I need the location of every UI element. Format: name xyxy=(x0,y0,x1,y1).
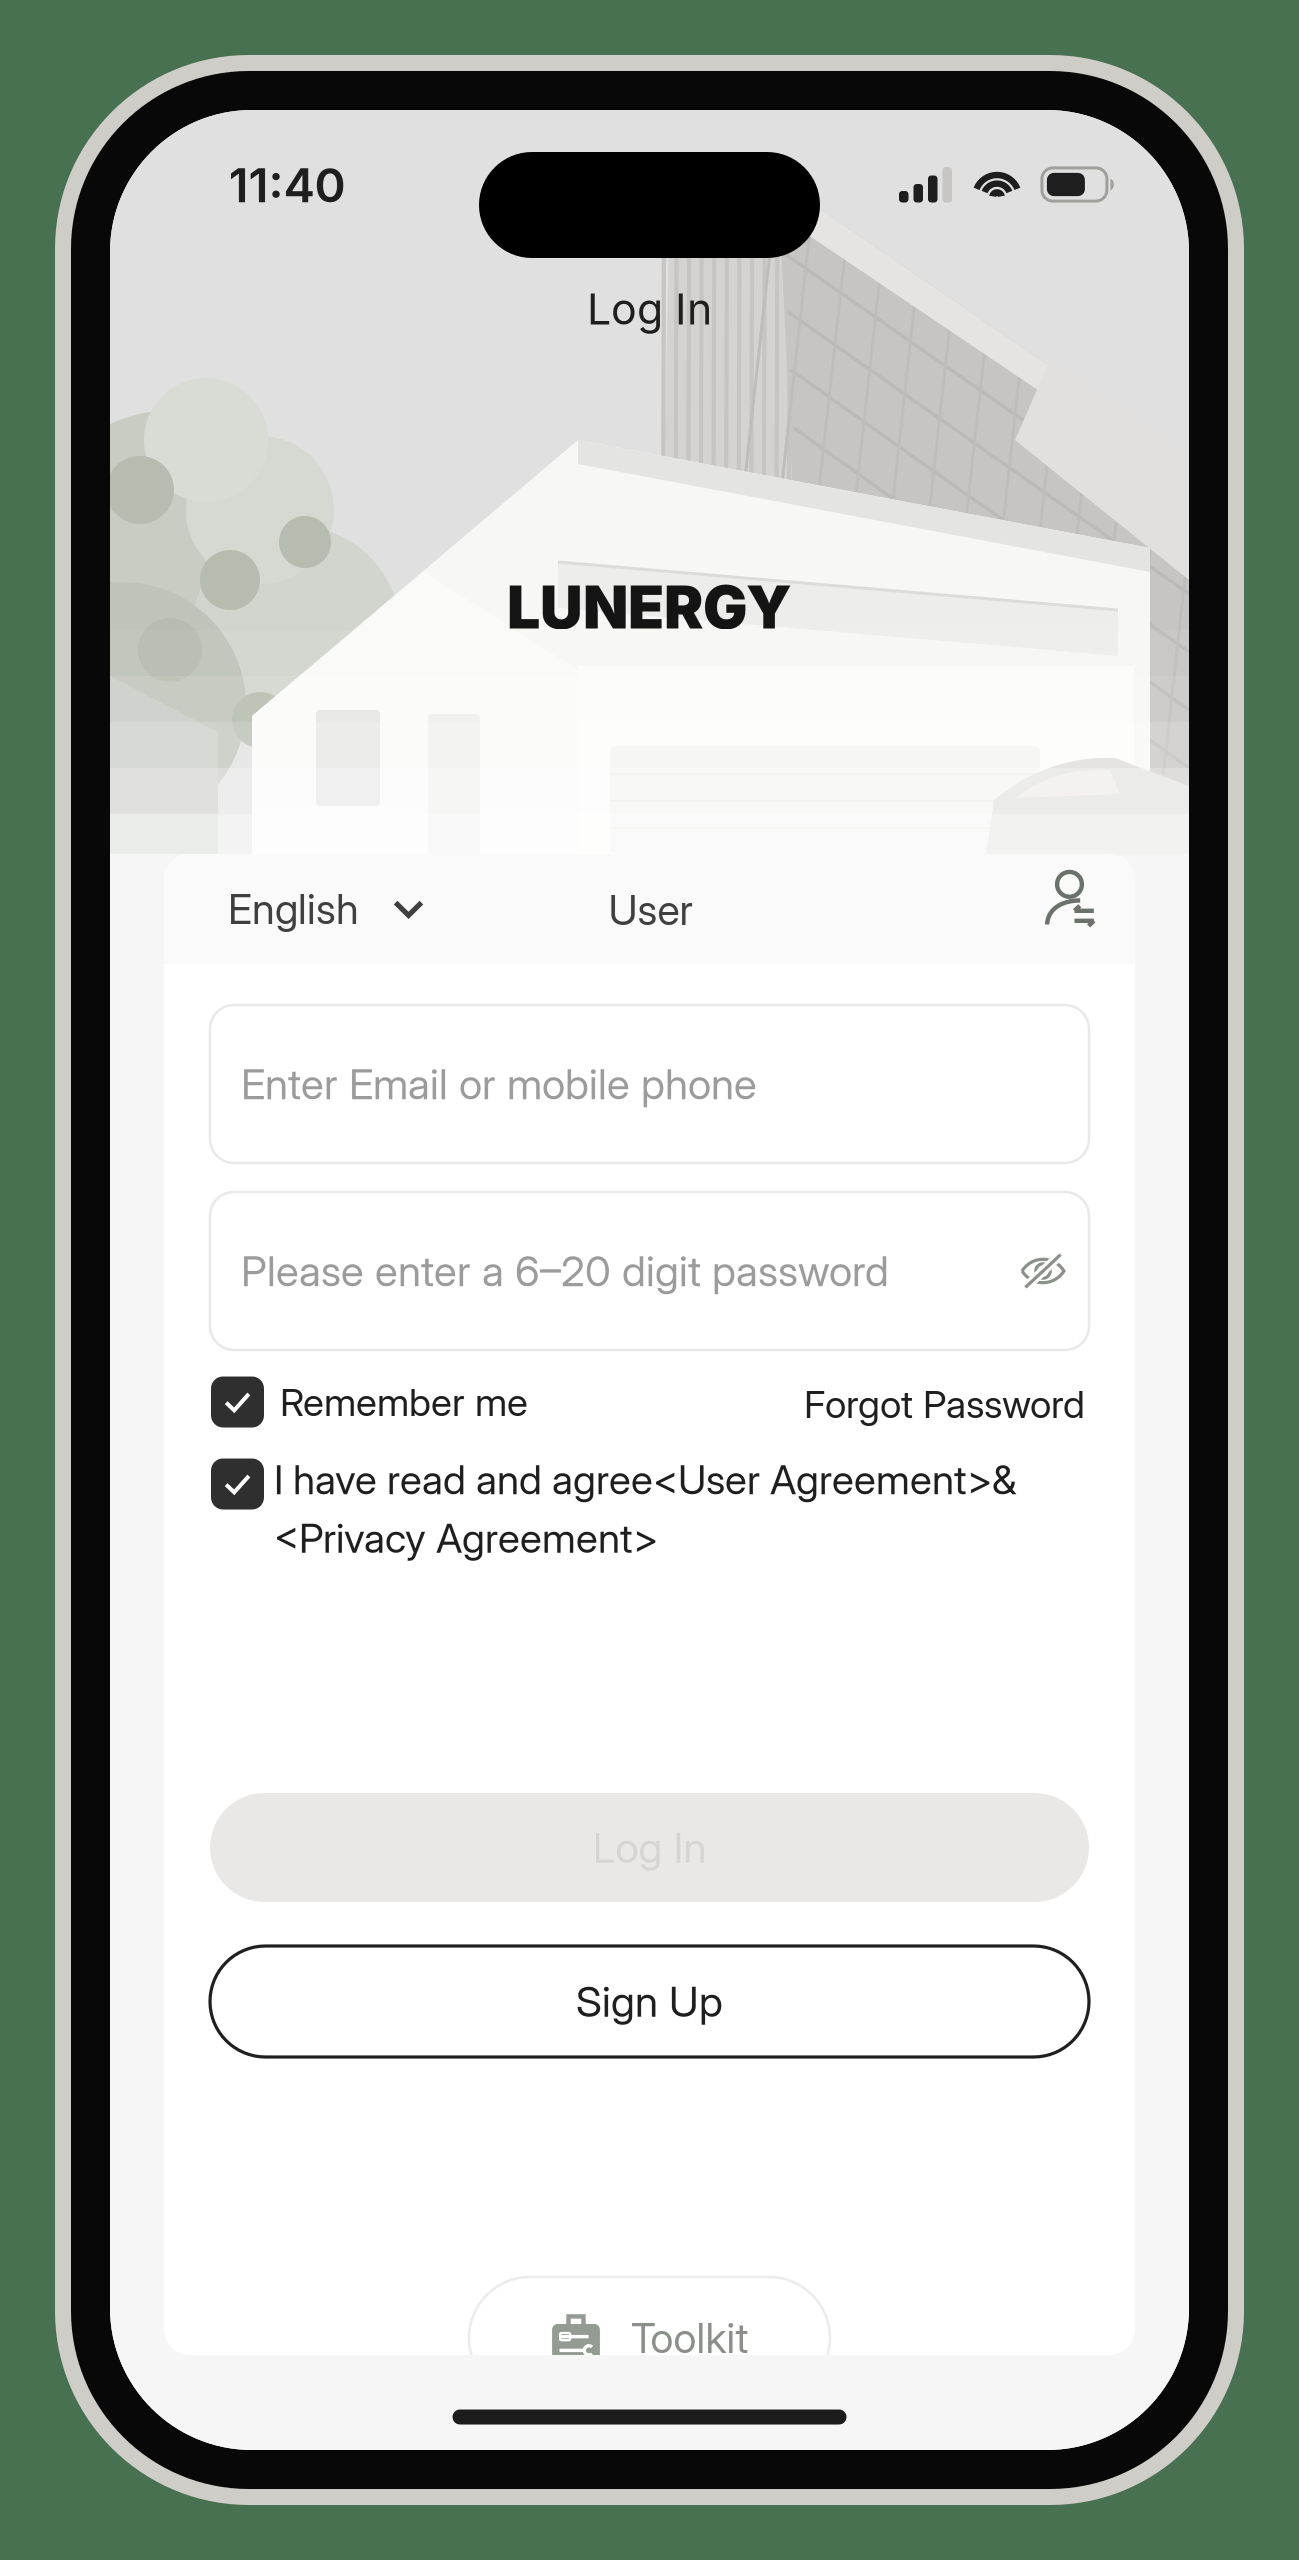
staticText: 11:40 xyxy=(228,156,345,213)
button[interactable]: Remember me xyxy=(211,1365,541,1439)
button[interactable]: Sign Up xyxy=(210,1946,1089,2057)
staticText: Enter Email or mobile phone xyxy=(241,1059,757,1109)
staticText: English xyxy=(228,884,359,934)
staticText: Remember me xyxy=(280,1379,528,1425)
staticText: Please enter a 6–20 digit password xyxy=(241,1246,889,1296)
staticText: LUNERGY xyxy=(507,571,792,643)
button[interactable]: Toolkit xyxy=(469,2277,830,2399)
staticText: Log In xyxy=(592,1822,706,1873)
button[interactable]: I have read and agree<User Agreement>& <… xyxy=(211,1441,1089,1577)
button[interactable]: Log In xyxy=(210,1793,1089,1902)
button[interactable]: Switch account type xyxy=(1028,853,1112,943)
staticText: I have read and agree<User Agreement>& <… xyxy=(274,1455,1017,1562)
button[interactable]: Forgot Password xyxy=(792,1367,1097,1441)
button[interactable]: English xyxy=(228,857,424,961)
staticText: User xyxy=(608,885,692,935)
staticText: Toolkit xyxy=(630,2313,748,2363)
staticText: Forgot Password xyxy=(804,1381,1085,1427)
staticText: Sign Up xyxy=(576,1976,723,2027)
staticText: Log In xyxy=(587,283,712,335)
